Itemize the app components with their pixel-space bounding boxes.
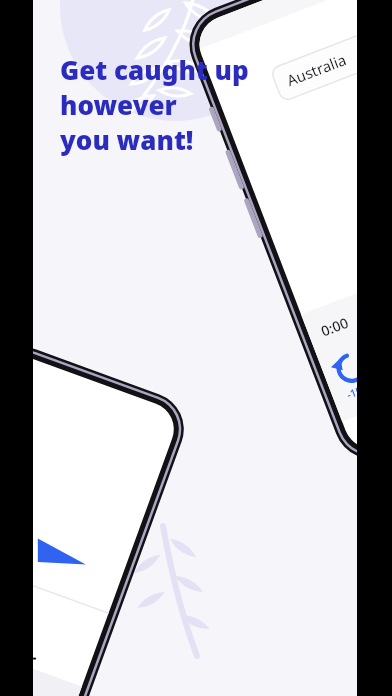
button[interactable]: Get caught up however you want — app pre… — [0, 0, 392, 696]
